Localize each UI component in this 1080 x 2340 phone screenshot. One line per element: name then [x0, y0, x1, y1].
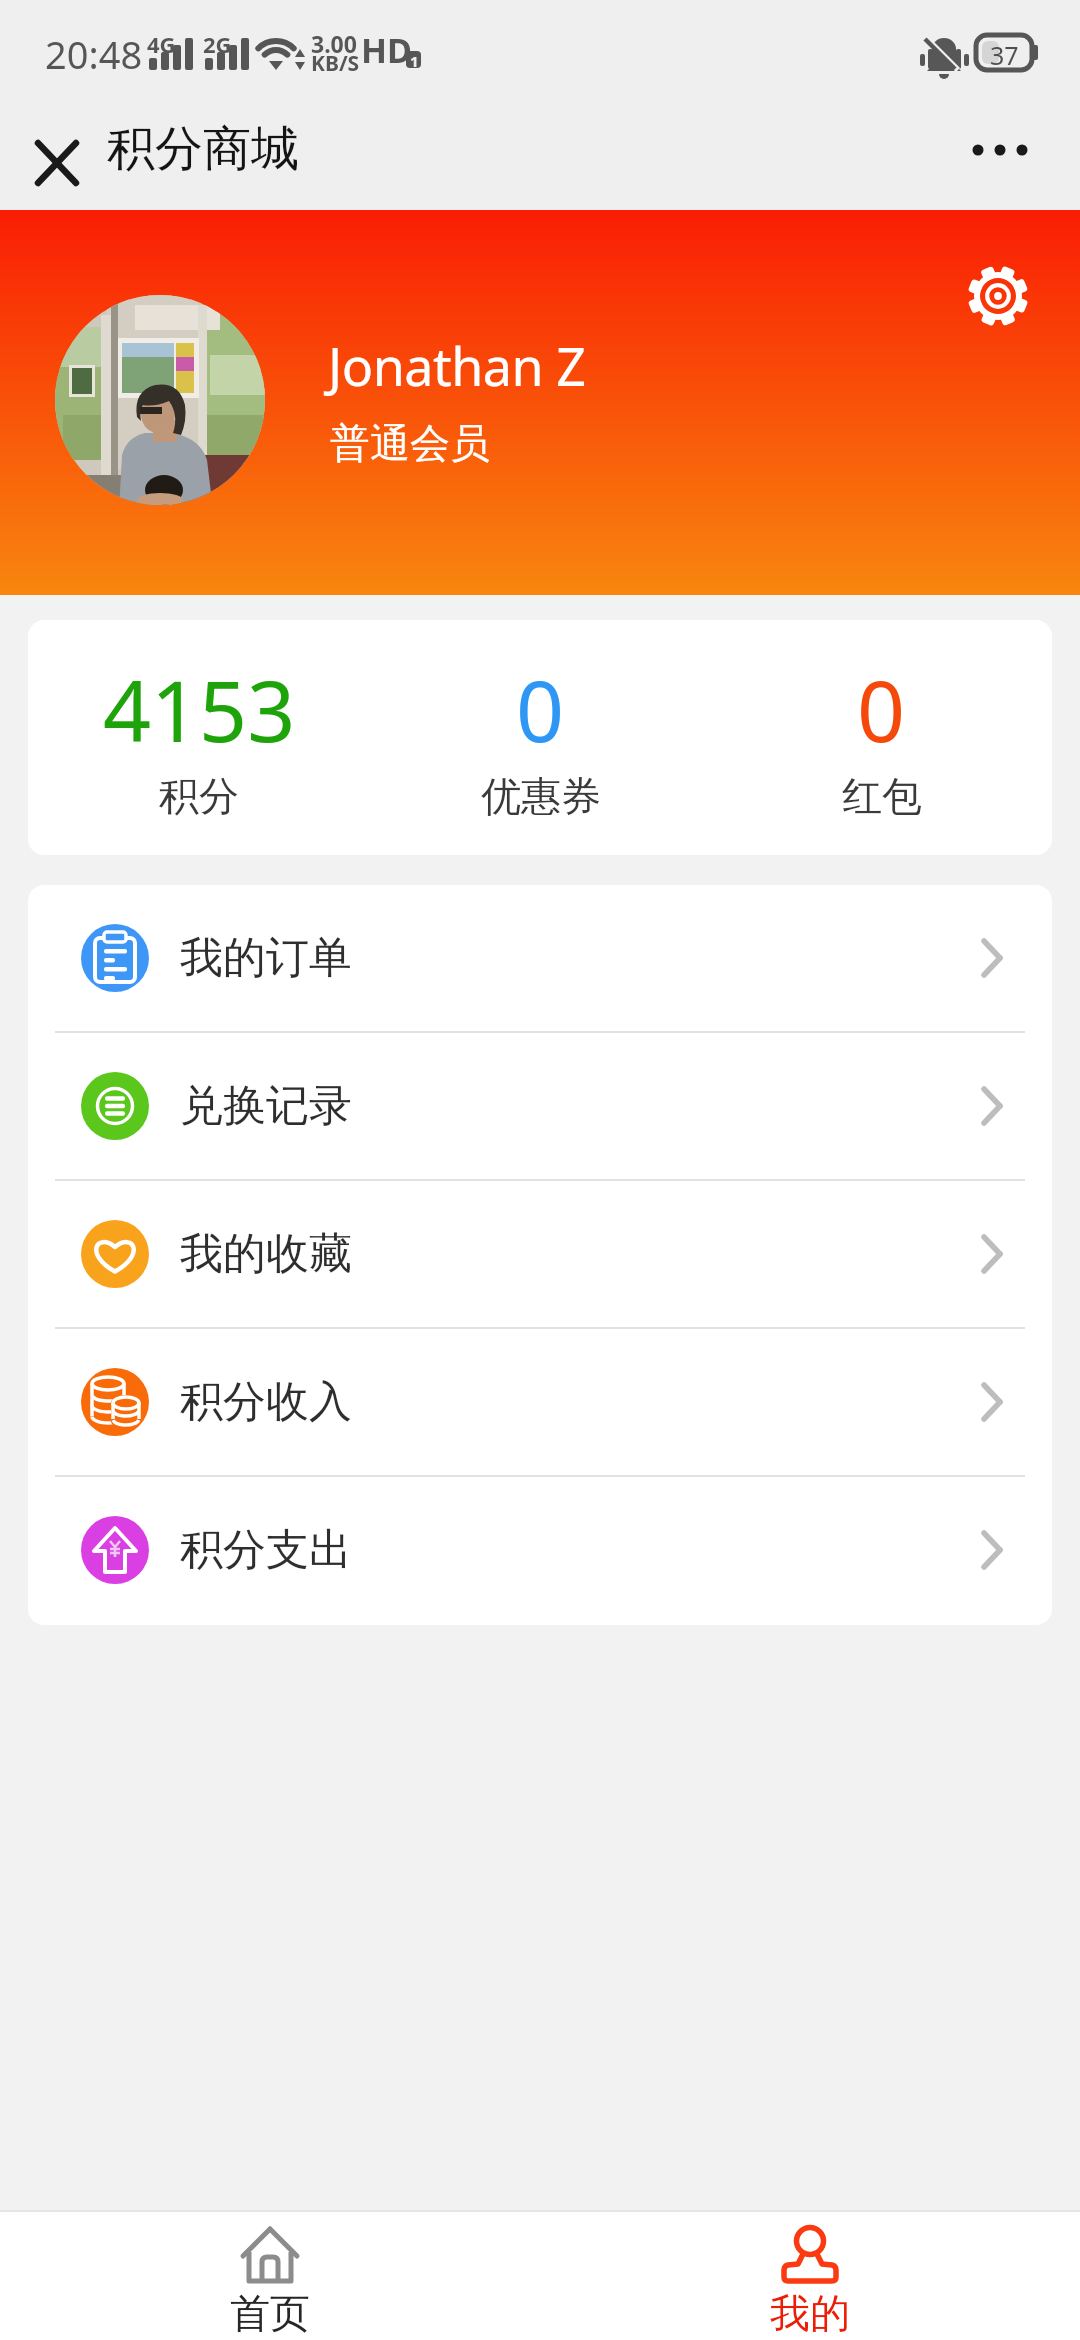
staticText: 积分 — [159, 771, 239, 821]
staticText: KB/S — [311, 49, 360, 78]
staticText: 0 — [857, 652, 906, 766]
staticText: 我的收藏 — [180, 1227, 352, 1281]
button[interactable] — [55, 295, 265, 505]
staticText: 4G — [147, 29, 176, 59]
staticText: 我的订单 — [180, 931, 352, 985]
staticText: 我的 — [770, 2288, 850, 2338]
staticText: 2G — [203, 29, 232, 59]
button[interactable]: 我的订单 — [28, 885, 1052, 1031]
staticText: 3.00 — [311, 28, 357, 59]
staticText: 红包 — [842, 771, 922, 821]
staticText: Jonathan Z — [328, 330, 586, 401]
button[interactable] — [20, 130, 90, 190]
button[interactable]: 4153 — [28, 620, 370, 855]
staticText: 37 — [990, 38, 1019, 68]
button[interactable]: 兑换记录 — [28, 1033, 1052, 1179]
staticText: 4153 — [103, 652, 296, 766]
staticText: 兑换记录 — [180, 1079, 352, 1133]
staticText: 1 — [410, 51, 419, 71]
staticText: 积分收入 — [180, 1375, 352, 1429]
button[interactable]: 积分支出 — [28, 1477, 1052, 1623]
staticText: 普通会员 — [330, 418, 490, 468]
button[interactable]: 首页 — [0, 2212, 540, 2340]
button[interactable]: 我的 — [540, 2212, 1080, 2340]
staticText: 积分支出 — [180, 1523, 352, 1577]
staticText: 0 — [516, 652, 565, 766]
staticText: 优惠券 — [481, 771, 601, 821]
button[interactable] — [962, 260, 1034, 332]
staticText: 20:48 — [45, 28, 143, 80]
staticText: 积分商城 — [107, 119, 299, 179]
staticText: HD — [361, 27, 412, 73]
button[interactable]: 我的收藏 — [28, 1181, 1052, 1327]
button[interactable]: 0 — [370, 620, 711, 855]
button[interactable]: 积分收入 — [28, 1329, 1052, 1475]
button[interactable] — [955, 100, 1045, 170]
button[interactable]: 0 — [711, 620, 1052, 855]
staticText: 首页 — [230, 2288, 310, 2338]
